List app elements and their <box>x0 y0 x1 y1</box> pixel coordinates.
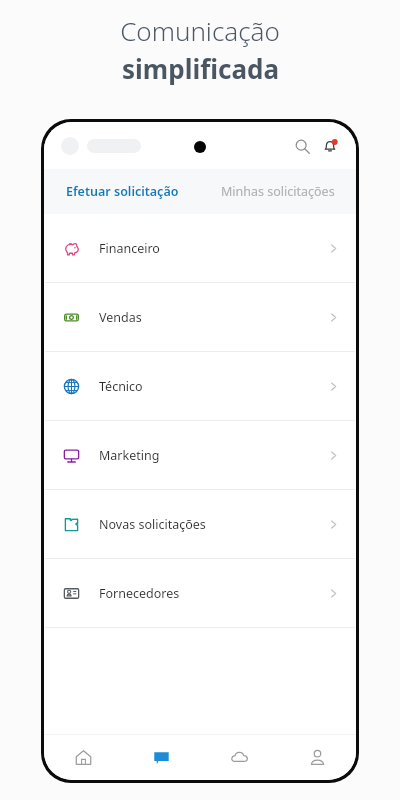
staticText: Financeiro <box>99 240 160 257</box>
staticText: Vendas <box>99 309 142 326</box>
staticText: Minhas solicitações <box>221 183 335 200</box>
button[interactable]: Notifications <box>316 132 344 160</box>
staticText: Fornecedores <box>99 585 180 602</box>
button[interactable]: Técnico <box>44 352 356 420</box>
button[interactable]: Cloud <box>200 734 278 780</box>
button[interactable]: Fornecedores <box>44 559 356 627</box>
button[interactable]: Financeiro <box>44 214 356 282</box>
button[interactable]: Minhas solicitações <box>200 169 356 214</box>
button[interactable]: Efetuar solicitação <box>44 169 200 214</box>
staticText: Comunicação <box>120 13 280 48</box>
staticText: Novas solicitações <box>99 516 206 533</box>
button[interactable]: Marketing <box>44 421 356 489</box>
button[interactable]: Vendas <box>44 283 356 351</box>
button[interactable]: Profile <box>278 734 356 780</box>
staticText: Técnico <box>99 378 143 395</box>
button[interactable]: Messages <box>122 734 200 780</box>
staticText: Marketing <box>99 447 160 464</box>
staticText: Efetuar solicitação <box>66 183 179 200</box>
button[interactable]: Novas solicitações <box>44 490 356 558</box>
button[interactable]: Home <box>44 734 122 780</box>
staticText: simplificada <box>122 51 279 86</box>
button[interactable]: Search <box>288 132 316 160</box>
